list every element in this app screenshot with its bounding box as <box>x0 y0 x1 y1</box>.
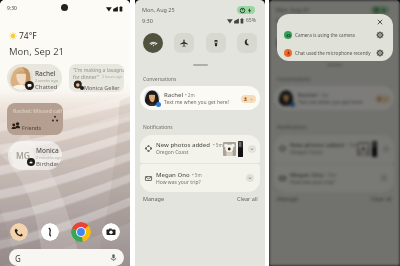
button[interactable]: MG <box>8 141 62 170</box>
button[interactable]: Voice search <box>109 253 118 262</box>
button[interactable]: Expand notification <box>380 174 388 182</box>
staticText: • 5m <box>347 142 357 148</box>
staticText: 9:30 <box>142 17 153 24</box>
staticText: Notifications <box>143 124 173 131</box>
staticText: 2 weeks ago <box>35 78 59 83</box>
button[interactable]: Rachel: Missed call <box>7 103 63 135</box>
button[interactable]: Megan Ono <box>274 164 394 192</box>
staticText: Friends <box>22 124 42 131</box>
staticText: 74°F <box>19 30 37 42</box>
staticText: • 5m <box>213 142 223 148</box>
staticText: New photos added <box>290 141 345 149</box>
button[interactable]: Quick setting <box>371 33 391 53</box>
staticText: New photos added <box>156 141 211 149</box>
staticText: 2 months ago <box>36 155 62 160</box>
button[interactable]: Quick setting <box>174 33 194 53</box>
staticText: • 5m <box>192 172 202 178</box>
button[interactable]: Quick setting <box>308 33 328 53</box>
staticText: Oregon Coast <box>290 149 323 156</box>
button[interactable]: Wi-Fi <box>143 33 163 53</box>
button[interactable]: Wi-Fi <box>277 33 297 53</box>
button[interactable]: Expand notification <box>248 145 256 153</box>
staticText: 9:30 <box>7 5 17 12</box>
staticText: Conversations <box>277 76 311 83</box>
staticText: 65% <box>246 17 256 24</box>
staticText: Camera is using the camera <box>295 32 355 38</box>
staticText: Rachel: Missed call <box>13 107 63 114</box>
staticText: Monica <box>36 146 59 155</box>
button[interactable]: Rachel <box>274 86 394 110</box>
button[interactable]: Close <box>376 18 384 26</box>
button[interactable]: "I'm making a lasagna for dinner" <box>69 64 124 92</box>
staticText: "I'm making a lasagna for dinner" <box>73 67 124 81</box>
staticText: Monica Geller <box>84 84 120 91</box>
staticText: • 2m <box>319 92 329 98</box>
button[interactable]: G <box>9 249 124 266</box>
staticText: Text me when you get here! <box>298 99 363 106</box>
button[interactable]: Expand conversation <box>375 95 390 103</box>
button[interactable]: Expand conversation <box>241 95 256 103</box>
button[interactable]: Quick setting <box>237 33 257 53</box>
button[interactable]: Phone <box>10 223 28 241</box>
button[interactable]: New photos added <box>274 135 394 163</box>
staticText: Text me when you get here! <box>164 99 229 106</box>
button[interactable]: Battery saver <box>371 6 389 14</box>
button[interactable]: Expand notification <box>382 145 390 153</box>
button[interactable]: Camera <box>102 223 120 241</box>
staticText: Rachel <box>35 69 56 78</box>
button[interactable]: Manage <box>277 195 299 202</box>
button[interactable]: Expand notification <box>246 174 254 182</box>
staticText: Megan Ono <box>156 171 190 179</box>
staticText: Mon, Aug 25 <box>276 6 309 13</box>
button[interactable]: Quick setting <box>206 33 226 53</box>
staticText: Mon, Sep 21 <box>9 45 65 58</box>
button[interactable]: Quick setting <box>340 33 360 53</box>
button[interactable]: Clear all <box>237 195 258 202</box>
staticText: 65% <box>380 17 390 24</box>
button[interactable]: Battery saver <box>237 6 255 14</box>
staticText: Birthday! <box>36 160 62 168</box>
staticText: Megan Ono <box>290 171 324 179</box>
staticText: Rachel <box>164 91 183 99</box>
staticText: 9:30 <box>276 17 287 24</box>
button[interactable]: Megan Ono <box>140 164 260 192</box>
button[interactable]: Clear all <box>371 195 392 202</box>
staticText: Oregon Coast <box>156 149 189 156</box>
staticText: Conversations <box>143 76 177 83</box>
button[interactable]: Chrome <box>71 222 91 242</box>
staticText: • 5m <box>326 172 336 178</box>
button[interactable]: New photos added <box>140 135 260 163</box>
button[interactable]: Messages <box>41 223 59 241</box>
button[interactable]: Manage <box>143 195 165 202</box>
button[interactable]: Camera settings <box>376 31 384 39</box>
staticText: Chat used the microphone recently <box>295 50 371 56</box>
button[interactable]: Rachel <box>7 64 62 92</box>
staticText: Chatted <box>35 83 58 91</box>
staticText: Mon, Aug 25 <box>142 6 175 13</box>
staticText: G <box>15 253 21 264</box>
staticText: How was your trip? <box>156 179 201 186</box>
staticText: Notifications <box>277 124 307 131</box>
staticText: 2 hours ago <box>102 74 123 79</box>
staticText: How was your trip? <box>290 179 335 186</box>
button[interactable]: Microphone settings <box>376 49 384 57</box>
staticText: MG <box>16 150 30 162</box>
staticText: Rachel <box>298 91 317 99</box>
button[interactable]: Rachel <box>140 86 260 110</box>
staticText: • 2m <box>185 92 195 98</box>
